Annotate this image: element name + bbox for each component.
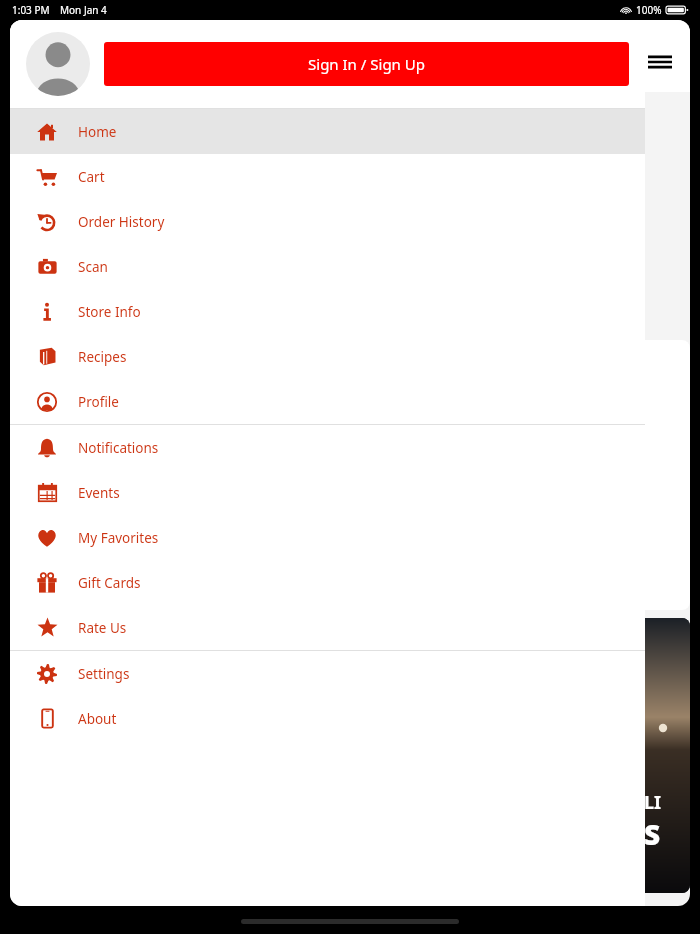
button[interactable]: Order History [10,199,645,244]
staticText: Scan [78,258,108,276]
staticText: 1:03 PM [12,3,50,17]
button[interactable]: Sign In / Sign Up [104,42,629,86]
staticText: Mon Jan 4 [60,3,107,17]
staticText: LI [644,790,662,815]
button[interactable]: Gift Cards [10,560,645,605]
staticText: Settings [78,665,130,683]
staticText: Order History [78,213,165,231]
staticText: My Favorites [78,529,159,547]
button[interactable]: Cart [10,154,645,199]
staticText: Profile [78,393,119,411]
staticText: Recipes [78,348,127,366]
staticText: 100% [636,3,662,17]
button[interactable]: Profile [10,379,645,424]
staticText: Rate Us [78,619,127,637]
button[interactable]: Profile avatar [26,32,90,96]
staticText: Cart [78,168,105,186]
staticText: Events [78,484,120,502]
staticText: Home [78,123,117,141]
button[interactable]: About [10,696,645,741]
button[interactable]: Recipes [10,334,645,379]
button[interactable]: Rate Us [10,605,645,650]
staticText: S [644,815,661,853]
staticText: Store Info [78,303,141,321]
staticText: Notifications [78,439,159,457]
button[interactable]: My Favorites [10,515,645,560]
button[interactable]: Open navigation menu [642,44,678,80]
staticText: About [78,710,117,728]
button[interactable]: Settings [10,651,645,696]
staticText: Gift Cards [78,574,141,592]
staticText: Sign In / Sign Up [308,54,425,74]
button[interactable]: Events [10,470,645,515]
button[interactable]: Notifications [10,425,645,470]
button[interactable]: Scan [10,244,645,289]
button[interactable]: Home [10,109,645,154]
button[interactable]: Store Info [10,289,645,334]
